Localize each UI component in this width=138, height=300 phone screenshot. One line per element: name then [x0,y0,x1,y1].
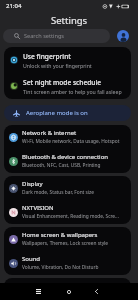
button[interactable]: Home [58,283,80,300]
staticText: Tint screen amber to help you fall aslee… [23,88,122,95]
button[interactable]: Display [4,176,131,200]
staticText: Visual Enhancement, Reading mode, Scre..… [22,213,119,220]
button[interactable]: Use fingerprint [4,47,131,73]
button[interactable]: NXTVISION [4,200,131,224]
button[interactable]: Back [85,283,107,300]
button[interactable]: Search settings [3,29,110,43]
staticText: Sound [22,255,41,263]
staticText: 21:04 [6,2,22,10]
button[interactable]: Home screen & wallpapers [4,227,131,251]
staticText: Use fingerprint [23,52,71,61]
staticText: NXTVISION [22,204,54,212]
staticText: Unlock with your fingerprint [23,62,92,69]
staticText: Bluetooth, NFC, Cast, USB, Printing [22,162,101,169]
staticText: Home screen & wallpapers [22,231,98,239]
staticText: Volume, Vibration, Do Not Disturb [22,264,99,271]
staticText: Dark mode, Status bar, Font size [22,189,95,196]
button[interactable]: Network & internet [4,125,131,149]
staticText: Network & internet [22,129,77,137]
staticText: Gesture, Smart assistant, Screen recorde… [22,290,116,297]
button[interactable]: Account [117,30,129,42]
button[interactable]: Bluetooth & device connection [4,149,131,173]
staticText: Wi-Fi, Mobile network, Data usage, Hotsp… [22,138,120,145]
button[interactable]: Recent apps [27,283,49,300]
button[interactable]: Aeroplane mode is on [4,105,131,121]
staticText: Settings [51,14,88,27]
staticText: Search settings [24,32,65,40]
staticText: Wallpapers, Themes, Lock screen style [22,240,109,247]
staticText: Bluetooth & device connection [22,153,108,161]
staticText: Aeroplane mode is on [26,109,88,117]
button[interactable]: Sound [4,251,131,275]
staticText: Advanced features [22,281,75,289]
button[interactable]: Advanced features [4,278,131,300]
staticText: Display [22,180,43,188]
button[interactable]: Set night mode schedule [4,73,131,99]
staticText: Set night mode schedule [23,78,102,87]
